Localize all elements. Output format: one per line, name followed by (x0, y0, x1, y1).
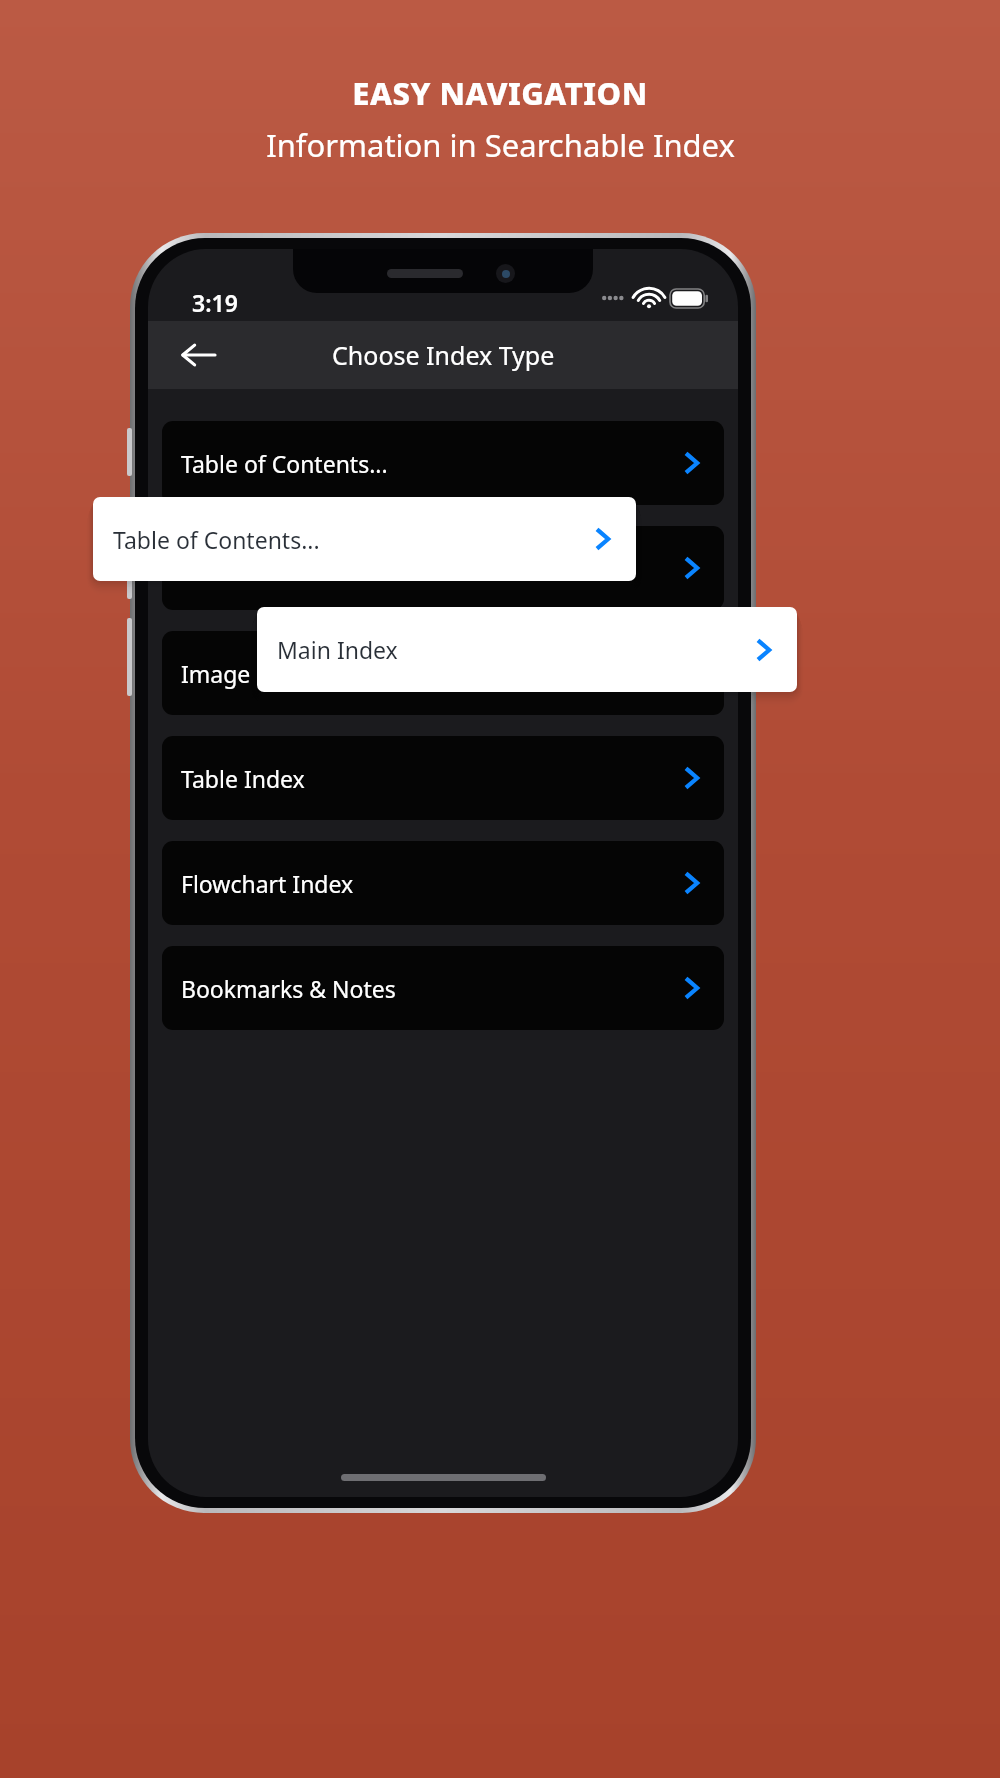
staticText: Table of Contents... (113, 524, 320, 555)
button[interactable]: Table Index (162, 736, 724, 820)
staticText: Main Index (181, 553, 302, 584)
staticText: Main Index (277, 634, 398, 665)
button[interactable]: Image Index (162, 631, 724, 715)
button[interactable]: Flowchart Index (162, 841, 724, 925)
staticText: Table Index (181, 763, 305, 794)
staticText: Flowchart Index (181, 868, 354, 899)
staticText: 3:19 (192, 287, 238, 318)
staticText: Table of Contents... (181, 448, 388, 479)
staticText: Image Index (181, 658, 318, 689)
button[interactable]: Table of Contents... (93, 497, 636, 581)
button[interactable]: Back (170, 327, 226, 383)
staticText: EASY NAVIGATION (352, 72, 648, 114)
button[interactable]: Main Index (257, 607, 797, 692)
staticText: Bookmarks & Notes (181, 973, 396, 1004)
button[interactable]: Table of Contents... (162, 421, 724, 505)
button[interactable]: Bookmarks & Notes (162, 946, 724, 1030)
button[interactable]: Main Index (162, 526, 724, 610)
staticText: Information in Searchable Index (266, 124, 735, 166)
staticText: Choose Index Type (332, 338, 555, 372)
